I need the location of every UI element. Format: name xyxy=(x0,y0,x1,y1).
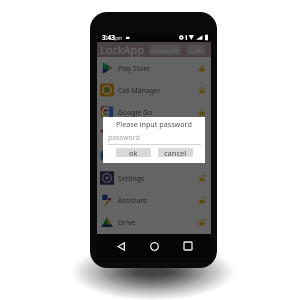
staticText: Play Store xyxy=(118,64,151,73)
staticText: Please input password xyxy=(116,119,192,129)
staticText: change PIN xyxy=(151,47,180,54)
staticText: password xyxy=(108,133,140,143)
button[interactable]: Drive xyxy=(97,211,211,233)
staticText: LockApp xyxy=(100,42,145,57)
staticText: Settings xyxy=(118,174,145,183)
staticText: Call Manager xyxy=(118,86,161,95)
staticText: Messages xyxy=(118,152,151,161)
button[interactable]: Back xyxy=(111,236,131,256)
button[interactable]: cancel xyxy=(158,148,193,157)
button[interactable]: Play Store xyxy=(97,57,211,79)
button[interactable]: Google Go xyxy=(97,101,211,123)
button[interactable]: Home xyxy=(144,236,164,256)
button[interactable]: ok xyxy=(116,148,151,157)
button[interactable]: Lock xyxy=(187,45,205,55)
staticText: Google Go xyxy=(118,108,153,117)
button[interactable]: Recents xyxy=(178,236,198,256)
button[interactable]: Assistant xyxy=(97,189,211,211)
staticText: Drive xyxy=(118,218,136,227)
staticText: ok xyxy=(129,148,138,157)
staticText: 3:43 xyxy=(102,33,115,42)
staticText: Assistant xyxy=(118,196,148,205)
staticText: Gmail xyxy=(118,130,137,139)
button[interactable]: change PIN xyxy=(149,45,181,55)
button[interactable]: Call Manager xyxy=(97,79,211,101)
button[interactable]: Gmail xyxy=(97,123,211,145)
button[interactable]: Messages xyxy=(97,145,211,167)
staticText: cancel xyxy=(164,148,187,157)
staticText: Lock xyxy=(190,47,202,54)
button[interactable]: Settings xyxy=(97,167,211,189)
staticText: pm xyxy=(115,35,122,41)
